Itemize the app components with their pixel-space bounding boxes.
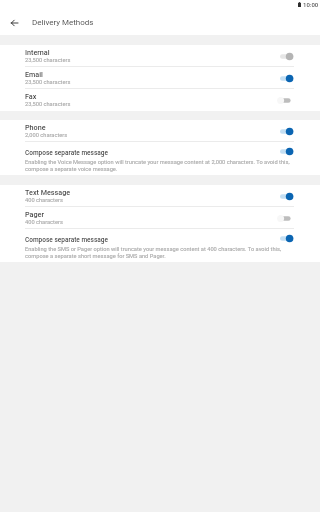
staticText: Fax [25, 92, 37, 100]
staticText: Phone [25, 123, 46, 131]
staticText: Compose separate message [25, 236, 108, 244]
button[interactable]: Email [0, 67, 320, 89]
button[interactable]: Pager [0, 207, 320, 229]
button[interactable]: Fax [0, 89, 320, 111]
staticText: Text Message [25, 188, 71, 196]
staticText: 2,000 characters [25, 132, 68, 139]
staticText: 400 characters [25, 197, 63, 204]
staticText: Internal [25, 48, 50, 56]
staticText: 10:00 [303, 1, 319, 8]
staticText: Delivery Methods [32, 18, 94, 27]
staticText: 23,500 characters [25, 79, 71, 86]
staticText: Pager [25, 210, 44, 218]
button[interactable]: Phone [0, 120, 320, 142]
staticText: Enabling the Voice Message option will t… [25, 159, 290, 173]
staticText: 23,500 characters [25, 57, 71, 64]
staticText: 400 characters [25, 219, 63, 226]
staticText: 23,500 characters [25, 101, 71, 108]
button[interactable]: Compose separate message [0, 142, 320, 175]
button[interactable]: Internal [0, 45, 320, 67]
button[interactable]: Text Message [0, 185, 320, 207]
staticText: Compose separate message [25, 149, 108, 157]
staticText: Enabling the SMS or Pager option will tr… [25, 246, 290, 260]
button[interactable]: Compose separate message [0, 229, 320, 262]
staticText: Email [25, 70, 43, 78]
button[interactable]: Back [3, 11, 26, 34]
